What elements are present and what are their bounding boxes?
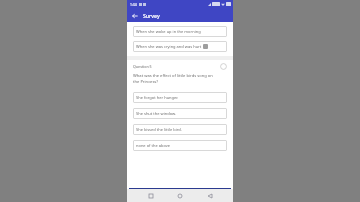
staticText: When she woke up in the morning (136, 29, 201, 34)
staticText: What was the effect of little birds song… (133, 73, 213, 85)
staticText: Question 5 (133, 64, 152, 69)
staticText: 1:34 (130, 2, 137, 7)
button[interactable]: She forgot her hunger. (133, 92, 227, 103)
button[interactable]: Recent apps (145, 190, 157, 202)
button[interactable]: When she woke up in the morning (133, 26, 227, 37)
staticText: She forgot her hunger. (136, 95, 179, 100)
staticText: She shut the window. (136, 111, 177, 116)
button[interactable]: Back (129, 10, 140, 21)
staticText: When she was crying and was hurt (136, 44, 202, 49)
staticText: none of the above (136, 143, 171, 148)
button[interactable]: Back (204, 190, 216, 202)
button[interactable]: Home (174, 190, 186, 202)
other: Progress (220, 63, 227, 70)
button[interactable]: She shut the window. (133, 108, 227, 119)
staticText: She kissed the little bird. (136, 127, 182, 132)
staticText: Survey (143, 12, 160, 19)
button[interactable]: When she was crying and was hurt (133, 41, 227, 52)
button[interactable]: She kissed the little bird. (133, 124, 227, 135)
button[interactable]: none of the above (133, 140, 227, 151)
